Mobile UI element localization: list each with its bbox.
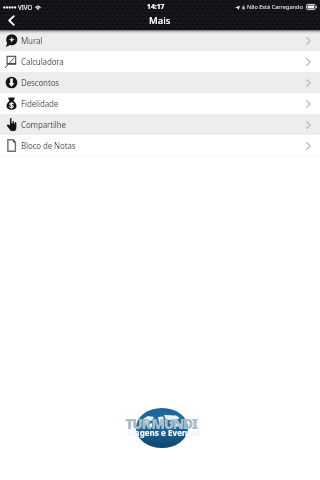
button[interactable]: Compartilhe <box>0 114 320 135</box>
staticText: Compartilhe <box>21 119 66 130</box>
staticText: Descontos <box>21 77 60 88</box>
button[interactable]: Fidelidade <box>0 93 320 114</box>
button[interactable]: Mural <box>0 30 320 51</box>
staticText: Não Está Carregando <box>247 3 303 11</box>
button[interactable]: Calculadora <box>0 51 320 72</box>
staticText: Calculadora <box>21 56 64 67</box>
staticText: Bloco de Notas <box>21 140 76 151</box>
staticText: 14:17 <box>147 2 165 11</box>
button[interactable]: Back <box>0 13 22 30</box>
staticText: Mais <box>149 14 171 27</box>
button[interactable]: Bloco de Notas <box>0 135 320 156</box>
staticText: Mural <box>21 35 43 46</box>
staticText: Fidelidade <box>21 98 59 109</box>
staticText: TUR MUNDI <box>125 414 197 433</box>
button[interactable]: Descontos <box>0 72 320 93</box>
staticText: Viagens e Eventos <box>127 427 200 438</box>
staticText: VIVO <box>18 3 33 11</box>
